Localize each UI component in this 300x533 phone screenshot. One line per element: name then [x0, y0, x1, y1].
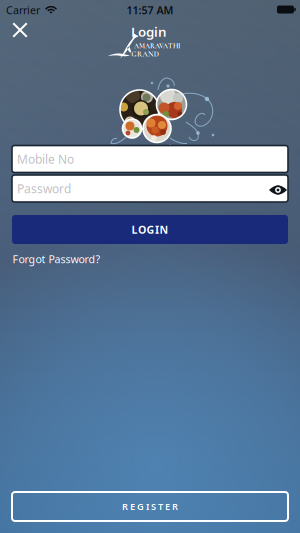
staticText: LOGIN [131, 222, 168, 237]
button[interactable]: Password [12, 175, 288, 202]
button[interactable]: Show Password [266, 181, 290, 199]
button[interactable]: Mobile No [12, 145, 288, 172]
button[interactable]: Register [12, 492, 288, 521]
button[interactable]: Forgot Password? [12, 252, 100, 266]
staticText: Password [17, 180, 71, 196]
staticText: R E G I S T E R [122, 500, 178, 513]
button[interactable]: Close [7, 17, 33, 43]
staticText: Mobile No [17, 151, 74, 167]
staticText: Login [131, 23, 167, 40]
staticText: GRAND [131, 49, 159, 58]
button[interactable]: LOGIN [12, 215, 288, 244]
staticText: AMARAVATHI [134, 42, 180, 50]
staticText: 11:57 AM [126, 3, 173, 17]
staticText: Carrier [6, 3, 40, 17]
staticText: Forgot Password? [12, 252, 100, 266]
